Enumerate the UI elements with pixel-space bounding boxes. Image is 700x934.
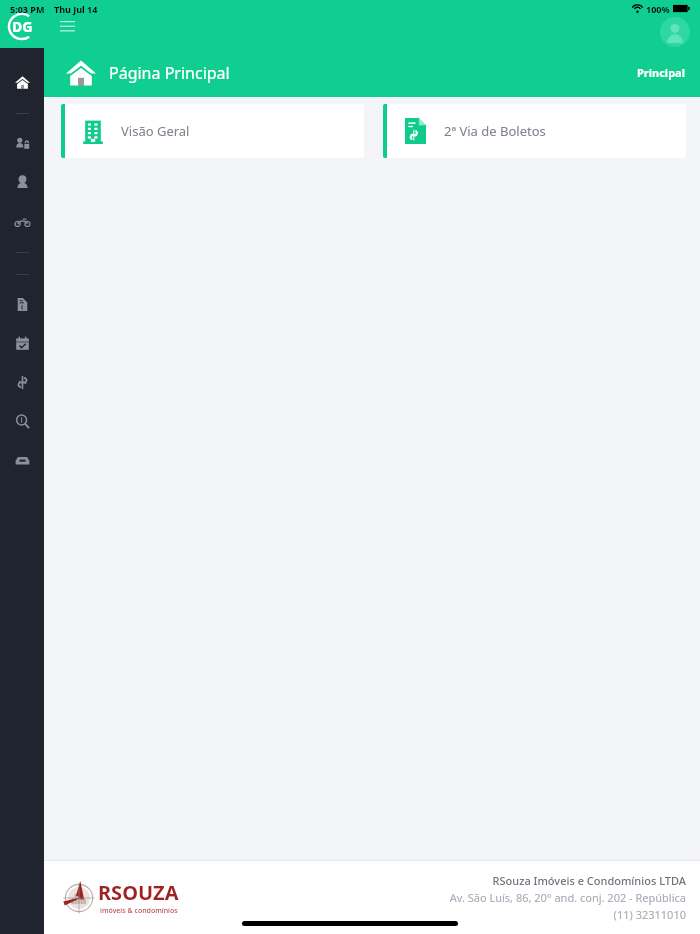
- staticText: (11) 32311010: [613, 907, 686, 922]
- button[interactable]: Documents: [0, 285, 44, 324]
- button[interactable]: Vehicles: [0, 202, 44, 241]
- staticText: RSouza Imóveis e Condomínios LTDA: [492, 873, 686, 888]
- button[interactable]: Home: [0, 63, 44, 102]
- button[interactable]: Inbox: [0, 441, 44, 480]
- staticText: RSOUZA: [98, 879, 179, 906]
- button[interactable]: Search charges: [0, 402, 44, 441]
- staticText: Visão Geral: [121, 122, 190, 140]
- button[interactable]: Menu: [54, 13, 81, 40]
- staticText: 2ª Via de Boletos: [444, 122, 546, 140]
- staticText: DG: [12, 17, 33, 36]
- staticText: Av. São Luís, 86, 20° and. conj. 202 - R…: [449, 890, 686, 905]
- staticText: 5:03 PM: [10, 3, 45, 15]
- button[interactable]: Account: [660, 17, 690, 47]
- button[interactable]: Schedule: [0, 324, 44, 363]
- staticText: Principal: [637, 65, 685, 80]
- button[interactable]: 2ª Via de Boletos: [383, 104, 686, 158]
- staticText: 100%: [646, 3, 670, 15]
- button[interactable]: Users and access: [0, 124, 44, 163]
- staticText: imóveis & condomínios: [100, 906, 178, 916]
- staticText: Thu Jul 14: [54, 3, 98, 15]
- staticText: Página Principal: [109, 62, 230, 84]
- button[interactable]: Principal: [637, 65, 685, 80]
- button[interactable]: Visão Geral: [61, 104, 364, 158]
- button[interactable]: Profile: [0, 163, 44, 202]
- button[interactable]: DG logo: [6, 10, 39, 43]
- button[interactable]: Finance: [0, 363, 44, 402]
